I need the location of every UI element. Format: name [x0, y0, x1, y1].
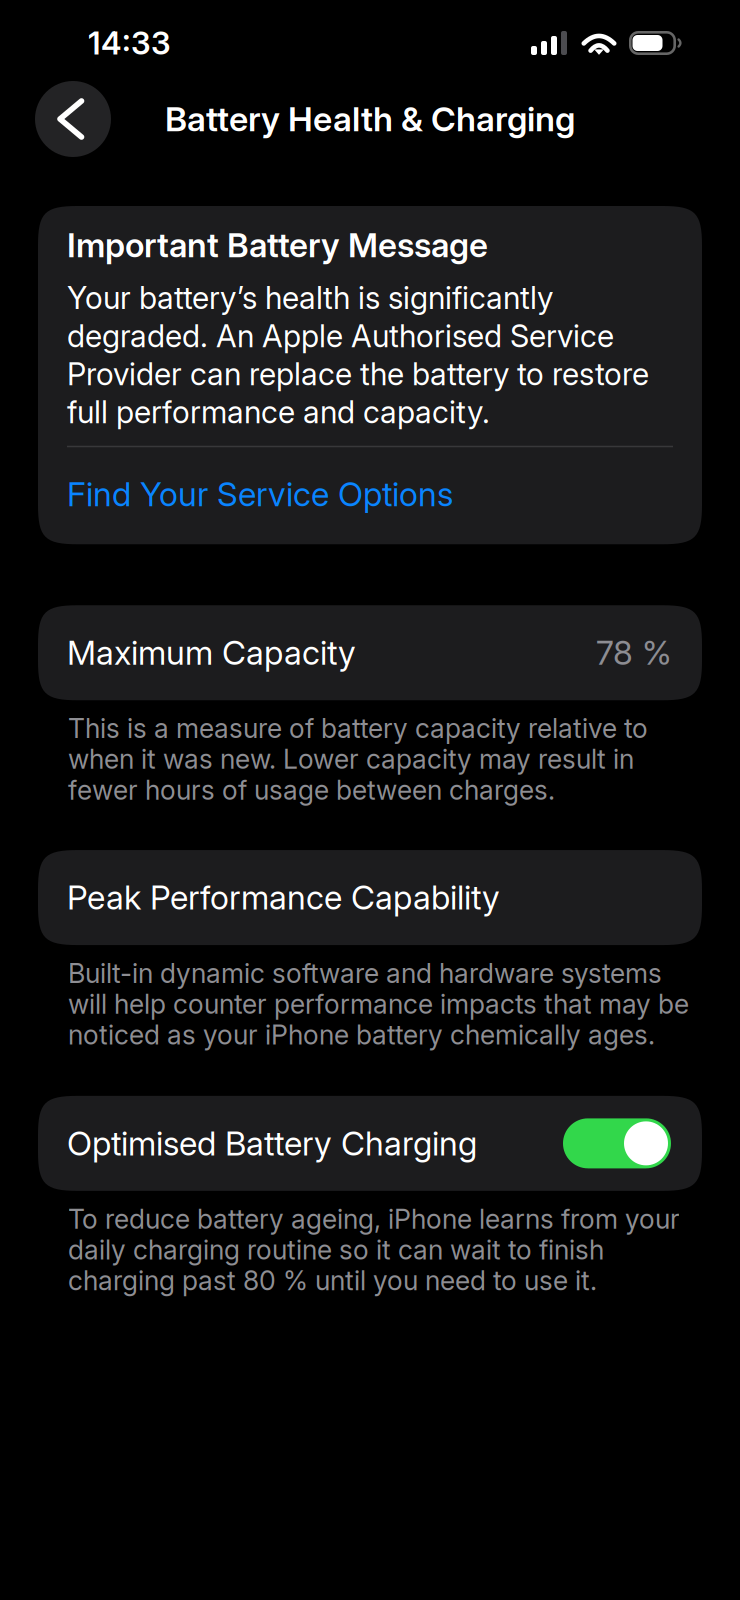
button[interactable]: Find Your Service Options [67, 474, 673, 514]
button[interactable]: Back [35, 81, 111, 157]
staticText: Battery Health & Charging [165, 98, 575, 139]
staticText: To reduce battery ageing, iPhone learns … [68, 1203, 680, 1297]
staticText: 78 % [596, 633, 672, 673]
staticText: 14:33 [88, 24, 171, 62]
staticText: Optimised Battery Charging [67, 1123, 477, 1163]
staticText: Find Your Service Options [67, 474, 453, 514]
button[interactable]: Maximum Capacity [38, 605, 702, 700]
staticText: Peak Performance Capability [67, 878, 500, 918]
button[interactable]: Optimised Battery Charging [38, 1096, 702, 1191]
staticText: Built-in dynamic software and hardware s… [68, 957, 689, 1051]
staticText: Important Battery Message [67, 225, 488, 265]
staticText: This is a measure of battery capacity re… [68, 712, 648, 806]
staticText: Your battery’s health is significantly d… [67, 279, 649, 431]
staticText: Maximum Capacity [67, 633, 356, 673]
button[interactable]: Optimised Battery Charging, on [563, 1118, 671, 1168]
button[interactable]: Peak Performance Capability [38, 850, 702, 945]
